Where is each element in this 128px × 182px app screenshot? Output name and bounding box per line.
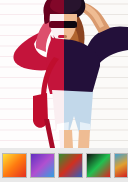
button[interactable] (31, 154, 54, 177)
button[interactable] (59, 154, 82, 177)
button[interactable] (3, 154, 26, 177)
button[interactable] (87, 154, 110, 177)
button[interactable] (115, 154, 127, 177)
